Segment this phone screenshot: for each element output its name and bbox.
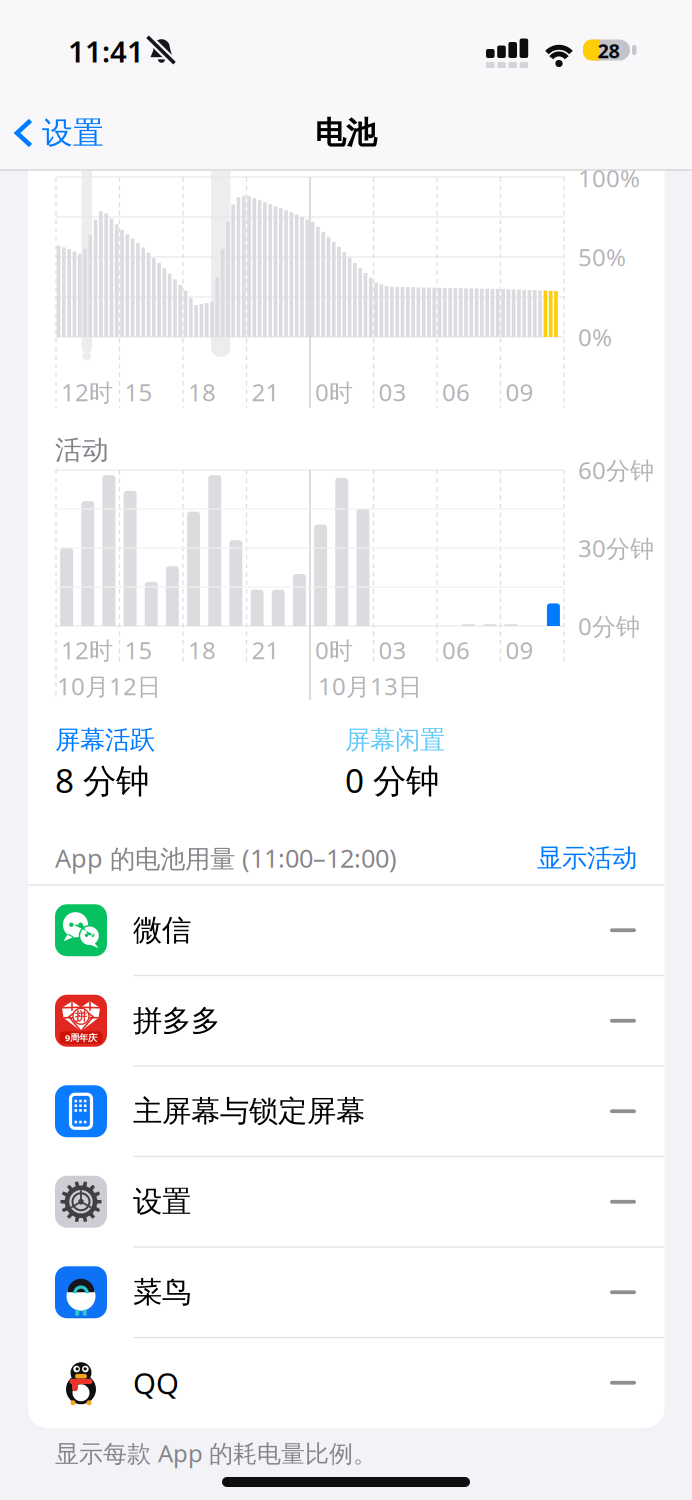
staticText: 06 bbox=[442, 634, 470, 666]
staticText: 0时 bbox=[315, 634, 353, 666]
staticText: 设置 bbox=[133, 1184, 191, 1220]
staticText: 活动 bbox=[55, 434, 109, 466]
staticText: 屏幕活跃 bbox=[55, 724, 155, 755]
staticText: 11:41 bbox=[68, 31, 144, 70]
staticText: 09 bbox=[505, 376, 533, 408]
button[interactable]: 微信 bbox=[28, 885, 664, 975]
staticText: 主屏幕与锁定屏幕 bbox=[133, 1093, 365, 1129]
button[interactable]: 菜鸟 bbox=[28, 1247, 664, 1337]
staticText: 0 分钟 bbox=[345, 758, 439, 802]
staticText: 21 bbox=[251, 376, 279, 408]
staticText: 10月12日 bbox=[57, 670, 161, 702]
staticText: QQ bbox=[133, 1363, 179, 1402]
staticText: 设置 bbox=[42, 114, 104, 152]
staticText: 显示活动 bbox=[537, 842, 637, 873]
staticText: 8 分钟 bbox=[55, 758, 149, 802]
staticText: 100% bbox=[578, 162, 640, 194]
staticText: 拼 bbox=[75, 1009, 87, 1024]
staticText: 拼多多 bbox=[133, 1003, 220, 1039]
staticText: 03 bbox=[378, 376, 406, 408]
staticText: 微信 bbox=[133, 912, 191, 948]
staticText: 屏幕闲置 bbox=[345, 724, 445, 755]
staticText: 0% bbox=[578, 321, 612, 353]
staticText: 15 bbox=[124, 634, 152, 666]
staticText: 菜鸟 bbox=[133, 1274, 191, 1310]
staticText: 0时 bbox=[315, 376, 353, 408]
staticText: 60分钟 bbox=[578, 454, 654, 486]
staticText: 显示每款 App 的耗电量比例。 bbox=[55, 1437, 377, 1469]
button[interactable]: 设置 bbox=[28, 1156, 664, 1247]
staticText: 09 bbox=[505, 634, 533, 666]
staticText: 10月13日 bbox=[318, 670, 422, 702]
staticText: 18 bbox=[188, 376, 216, 408]
button[interactable]: 拼 bbox=[28, 975, 664, 1066]
staticText: 21 bbox=[251, 634, 279, 666]
staticText: 15 bbox=[124, 376, 152, 408]
staticText: 12时 bbox=[61, 634, 113, 666]
staticText: 06 bbox=[442, 376, 470, 408]
staticText: App 的电池用量 (11:00–12:00) bbox=[55, 841, 397, 875]
staticText: 03 bbox=[378, 634, 406, 666]
button[interactable]: 设置 bbox=[14, 109, 134, 157]
staticText: 28 bbox=[597, 37, 619, 64]
button[interactable]: 主屏幕与锁定屏幕 bbox=[28, 1066, 664, 1156]
staticText: 12时 bbox=[61, 376, 113, 408]
button[interactable]: 显示活动 bbox=[417, 836, 637, 880]
button[interactable]: QQ bbox=[28, 1337, 664, 1428]
staticText: 30分钟 bbox=[578, 532, 654, 564]
staticText: 9周年庆 bbox=[65, 1031, 97, 1044]
staticText: 0分钟 bbox=[578, 610, 640, 642]
staticText: 电池 bbox=[315, 114, 377, 152]
staticText: 50% bbox=[578, 241, 626, 273]
staticText: 18 bbox=[188, 634, 216, 666]
